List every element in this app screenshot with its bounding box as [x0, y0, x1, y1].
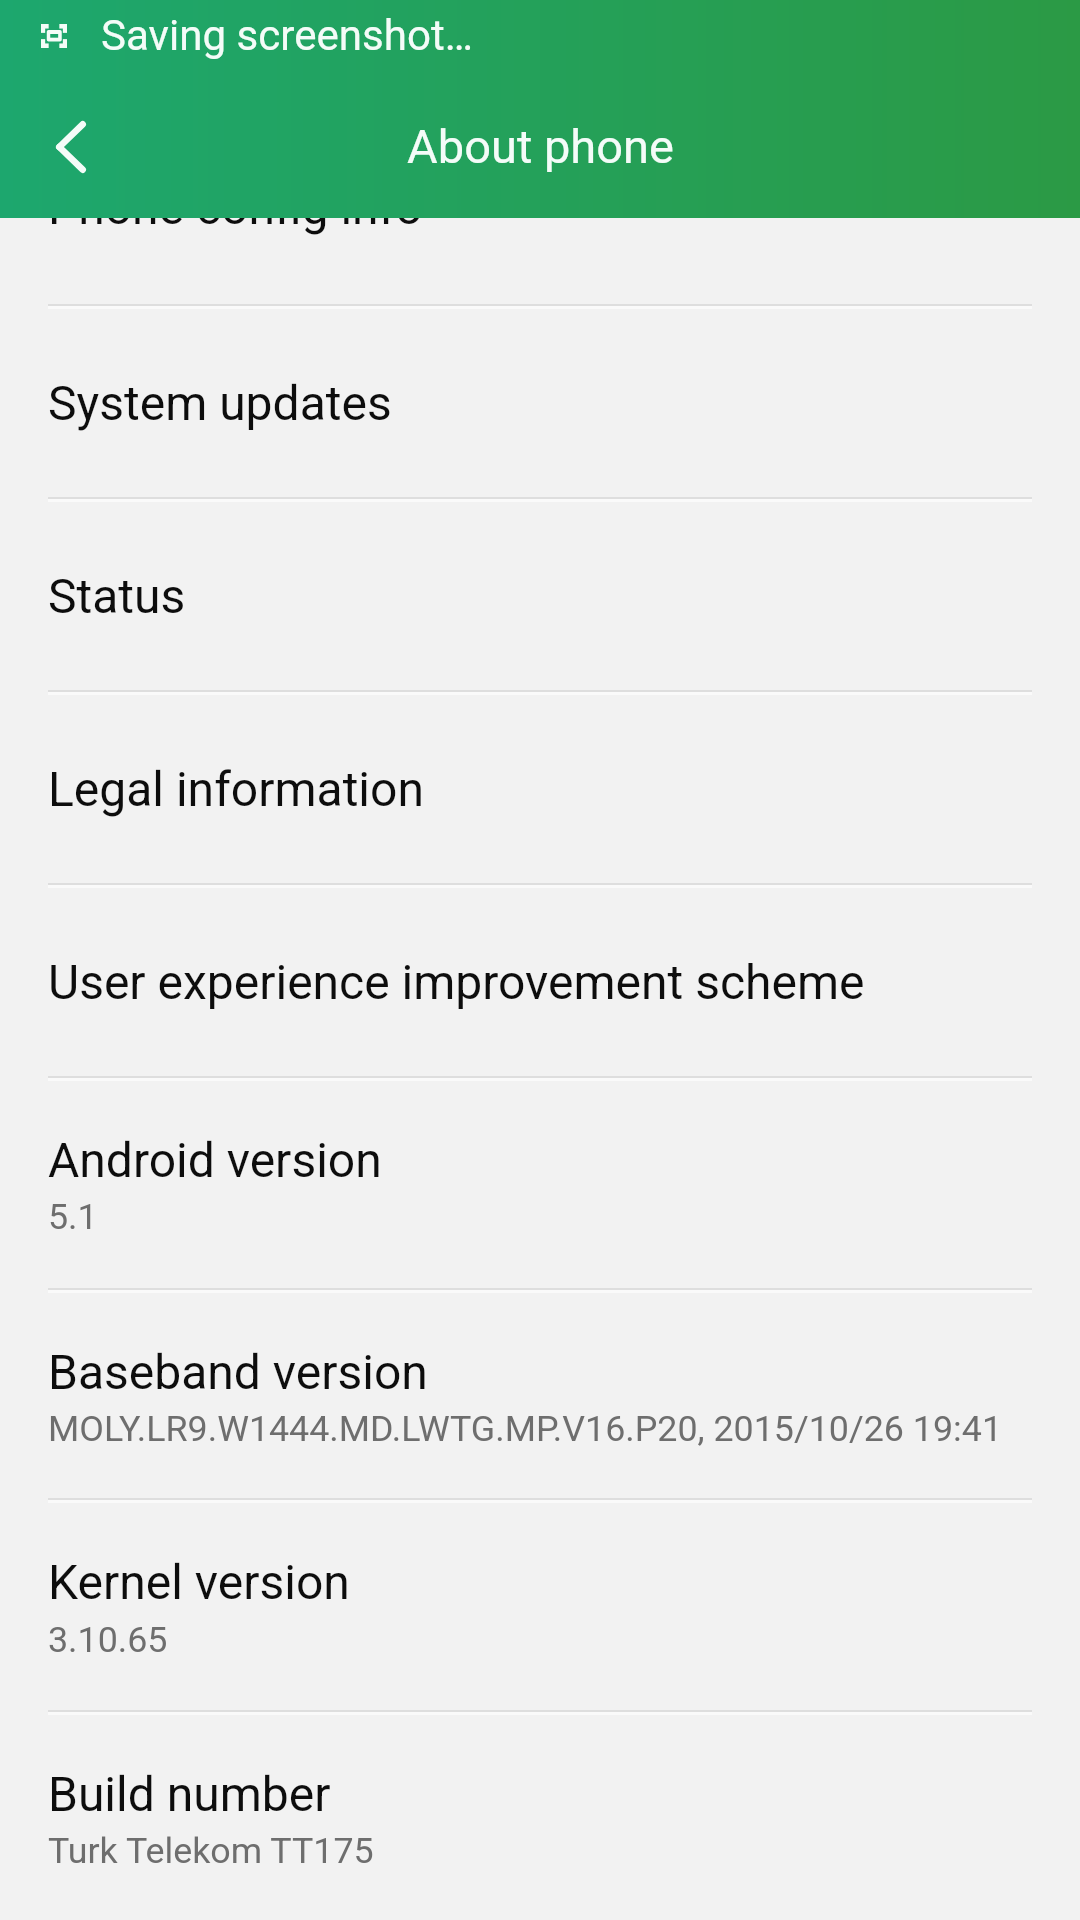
staticText: Build number	[48, 1766, 331, 1822]
button[interactable]: Legal information	[0, 690, 1080, 883]
staticText: System updates	[48, 375, 392, 431]
button[interactable]: Android version	[0, 1076, 1080, 1288]
button[interactable]: Navigate up	[3, 80, 141, 218]
button[interactable]: Phone config info	[0, 111, 1080, 304]
staticText: Baseband version	[48, 1344, 428, 1400]
button[interactable]: Build number	[0, 1710, 1080, 1920]
button[interactable]: System updates	[0, 304, 1080, 497]
staticText: 5.1	[48, 1196, 98, 1238]
staticText: Saving screenshot…	[101, 11, 473, 60]
button[interactable]: Kernel version	[0, 1498, 1080, 1710]
staticText: Android version	[48, 1132, 382, 1188]
staticText: Phone config info	[48, 179, 423, 235]
staticText: Turk Telekom TT175	[48, 1830, 374, 1872]
button[interactable]: User experience improvement scheme	[0, 883, 1080, 1076]
staticText: MOLY.LR9.W1444.MD.LWTG.MP.V16.P20, 2015/…	[48, 1408, 1002, 1450]
staticText: Kernel version	[48, 1554, 350, 1610]
button[interactable]: Status	[0, 497, 1080, 690]
button[interactable]: Baseband version	[0, 1288, 1080, 1498]
staticText: Status	[48, 568, 186, 624]
staticText: Legal information	[48, 761, 424, 817]
staticText: 3.10.65	[48, 1619, 168, 1661]
staticText: About phone	[407, 119, 674, 174]
staticText: User experience improvement scheme	[48, 954, 865, 1010]
